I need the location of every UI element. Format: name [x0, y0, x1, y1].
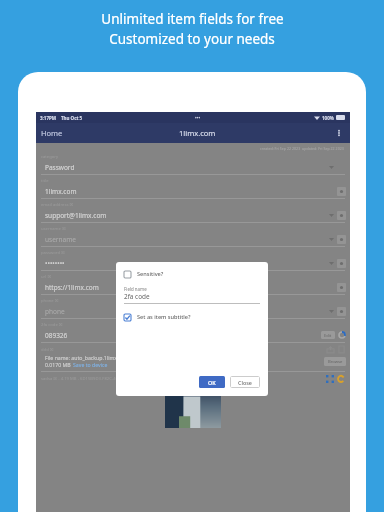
button[interactable]: email address ☒	[36, 202, 350, 226]
button[interactable]: Camera	[337, 307, 346, 316]
staticText: Sensitive?	[137, 270, 164, 278]
staticText: ddd ☒	[41, 347, 54, 353]
staticText: Field name	[124, 286, 147, 292]
staticText: Customized to your needs	[109, 30, 275, 48]
button[interactable]: More options	[333, 127, 345, 139]
button[interactable]: title	[36, 178, 350, 202]
staticText: username ☒	[41, 226, 66, 232]
staticText: Thu Oct 5	[61, 115, 83, 121]
staticText: Unlimited item fields for free	[101, 10, 284, 28]
staticText: Edit	[324, 333, 332, 338]
staticText: url ☒	[41, 274, 52, 280]
staticText: sadsa ☒ - 4.19 MB - 6D15B9D3-F82C-4C3F-B…	[41, 376, 174, 382]
staticText: Close	[238, 379, 252, 386]
staticText: 1limx.com	[45, 187, 77, 196]
staticText: 2fa code	[124, 292, 150, 301]
button[interactable]: OK	[199, 376, 225, 388]
staticText: Set as item subtitle?	[137, 313, 191, 321]
staticText: 089326	[45, 331, 68, 340]
staticText: ••••••••	[45, 259, 65, 268]
button[interactable]: Edit	[321, 331, 335, 339]
button[interactable]: Camera	[337, 235, 346, 244]
staticText: 3:17PM	[40, 115, 57, 121]
staticText: 2fa code ☒	[41, 322, 63, 328]
button[interactable]: Camera	[337, 259, 346, 268]
staticText: File name: auto_backup.1limx	[45, 354, 118, 361]
button[interactable]: Sensitive?	[124, 270, 260, 278]
staticText: Password	[45, 163, 75, 172]
button[interactable]: Set as item subtitle?	[124, 313, 260, 321]
staticText: •••	[195, 115, 201, 121]
staticText: password ☒	[41, 250, 65, 256]
staticText: phone	[45, 307, 65, 316]
button[interactable]: Save to device	[73, 361, 108, 368]
button[interactable]: phone ☒	[36, 298, 350, 322]
button[interactable]: url ☒	[36, 274, 350, 298]
button[interactable]: Camera	[337, 187, 346, 196]
staticText: phone ☒	[41, 298, 59, 304]
button[interactable]: Expand	[326, 375, 334, 383]
staticText: https://1limx.com	[45, 283, 99, 292]
button[interactable]: username ☒	[36, 226, 350, 250]
button[interactable]: password ☒	[36, 250, 350, 274]
staticText: 1limx.com	[179, 128, 216, 138]
staticText: category	[41, 154, 59, 160]
button[interactable]: Camera	[337, 211, 346, 220]
button[interactable]: Home	[41, 128, 63, 138]
staticText: title	[41, 178, 49, 184]
staticText: 0.0170 MB	[45, 361, 73, 368]
staticText: Browse	[328, 359, 343, 365]
button[interactable]: Browse	[324, 357, 346, 366]
staticText: username	[45, 235, 76, 244]
button[interactable]: Camera	[337, 283, 346, 292]
staticText: email address ☒	[41, 202, 74, 208]
button[interactable]: category	[36, 154, 350, 178]
button[interactable]: Refresh	[337, 375, 345, 383]
button[interactable]: Close	[230, 376, 260, 388]
staticText: created: Fri Sep 22 2023 updated: Fri Se…	[260, 146, 344, 151]
staticText: OK	[208, 379, 216, 386]
staticText: 100%	[322, 115, 334, 121]
other: Timer	[338, 331, 346, 339]
staticText: support@1limx.com	[45, 211, 107, 220]
